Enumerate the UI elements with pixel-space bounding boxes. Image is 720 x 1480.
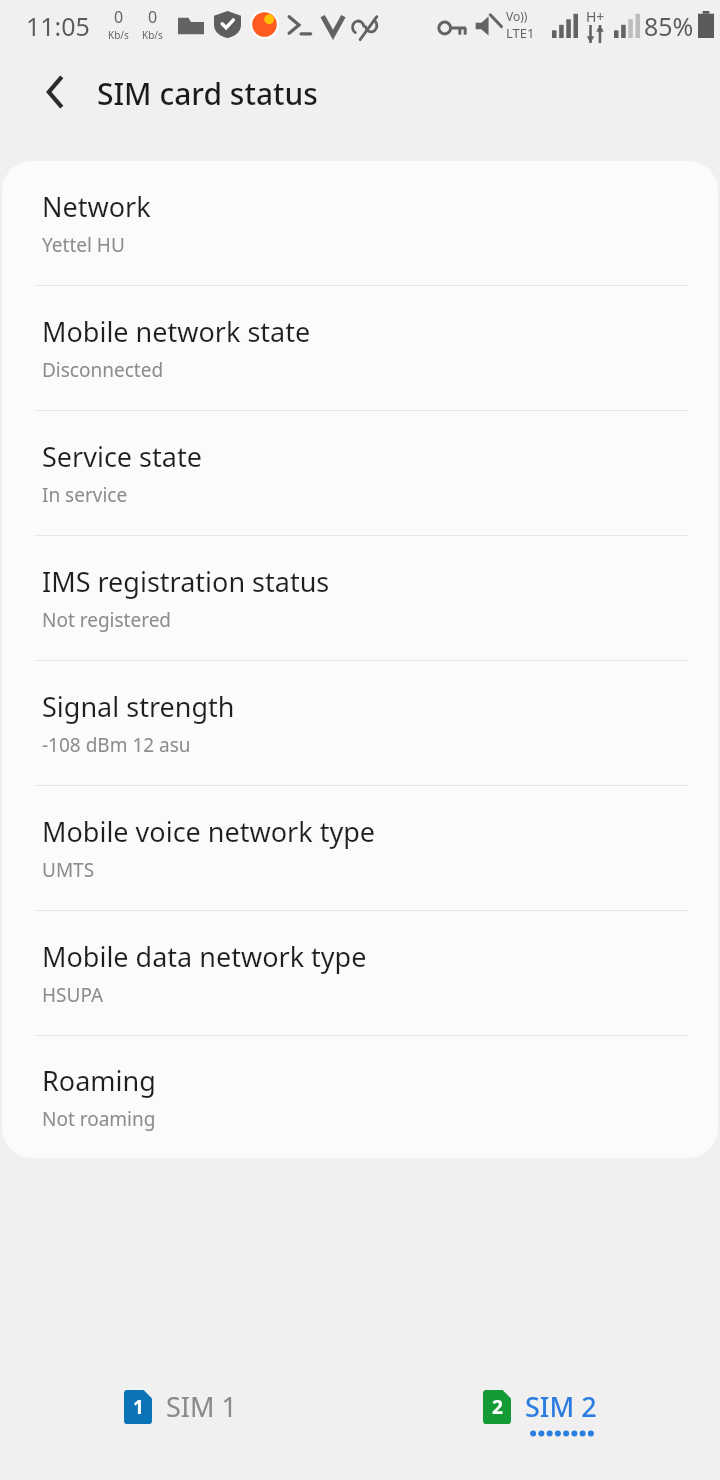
staticText: H+ (586, 7, 605, 26)
staticText: Not roaming (42, 1106, 156, 1132)
staticText: SIM 2 (525, 1388, 597, 1425)
button[interactable]: Network (2, 161, 718, 285)
button[interactable]: Service state (2, 411, 718, 535)
staticText: Yettel HU (42, 232, 125, 258)
staticText: Mobile voice network type (42, 813, 375, 850)
staticText: 2 (492, 1394, 503, 1420)
staticText: Mobile network state (42, 313, 311, 350)
staticText: Kb/s (108, 28, 129, 42)
staticText: Vo)) (506, 8, 528, 24)
staticText: 0 (114, 6, 124, 28)
button[interactable]: Mobile voice network type (2, 786, 718, 910)
button[interactable]: Back (28, 63, 86, 121)
staticText: Not registered (42, 607, 172, 633)
staticText: Disconnected (42, 357, 164, 383)
button[interactable]: Mobile network state (2, 286, 718, 410)
button[interactable]: 2 (360, 1388, 720, 1437)
staticText: 1 (133, 1394, 144, 1420)
staticText: Network (42, 188, 151, 225)
button[interactable]: Roaming (2, 1036, 718, 1158)
staticText: 85% (644, 9, 694, 43)
staticText: LTE1 (506, 24, 535, 42)
button[interactable]: Mobile data network type (2, 911, 718, 1035)
button[interactable]: 1 (0, 1388, 360, 1437)
staticText: SIM 1 (166, 1388, 237, 1425)
staticText: -108 dBm 12 asu (42, 732, 191, 758)
staticText: In service (42, 482, 128, 508)
staticText: Signal strength (42, 688, 235, 725)
button[interactable]: Signal strength (2, 661, 718, 785)
staticText: 11:05 (26, 9, 90, 43)
staticText: Service state (42, 438, 202, 475)
staticText: HSUPA (42, 982, 104, 1008)
staticText: Kb/s (142, 28, 163, 42)
staticText: 0 (148, 6, 158, 28)
staticText: IMS registration status (42, 563, 330, 600)
staticText: Roaming (42, 1062, 156, 1099)
staticText: Mobile data network type (42, 938, 367, 975)
button[interactable]: IMS registration status (2, 536, 718, 660)
staticText: SIM card status (97, 73, 318, 114)
staticText: UMTS (42, 857, 95, 883)
